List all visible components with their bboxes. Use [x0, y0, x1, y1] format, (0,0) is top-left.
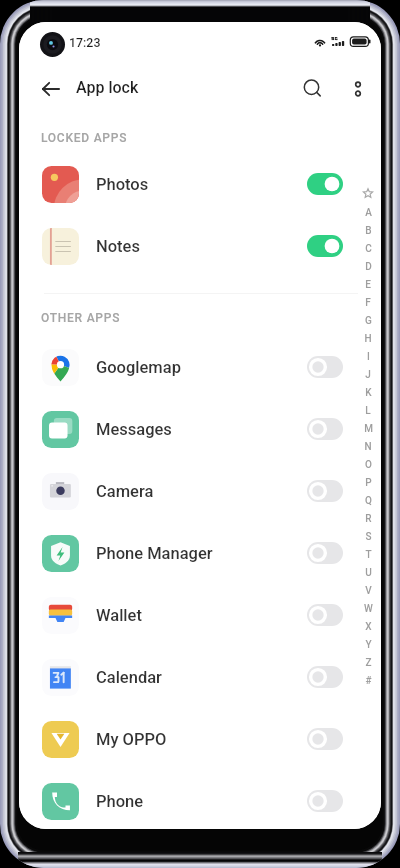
button[interactable]: Camera	[19, 460, 381, 522]
staticText: E	[365, 279, 371, 291]
staticText: #	[365, 675, 372, 687]
staticText: L	[365, 405, 371, 417]
staticText: H	[364, 333, 372, 345]
button[interactable]: App lock enabled	[307, 173, 343, 195]
staticText: Q	[365, 495, 372, 507]
staticText: W	[364, 603, 373, 615]
staticText: X	[365, 621, 372, 633]
button[interactable]: My OPPO	[19, 708, 381, 770]
staticText: Wallet	[96, 606, 142, 625]
staticText: O	[365, 459, 372, 471]
staticText: Googlemap	[96, 358, 181, 377]
button[interactable]: App lock disabled	[307, 666, 343, 688]
button[interactable]: Calendar	[19, 646, 381, 708]
staticText: 17:23	[69, 35, 101, 50]
button[interactable]: App lock disabled	[307, 790, 343, 812]
staticText: OTHER APPS	[41, 311, 121, 325]
staticText: I	[367, 351, 370, 363]
button[interactable]: Messages	[19, 398, 381, 460]
staticText: U	[365, 567, 372, 579]
staticText: F	[365, 297, 371, 309]
staticText: V	[365, 585, 372, 597]
button[interactable]: App lock disabled	[307, 356, 343, 378]
button[interactable]: Phone	[19, 770, 381, 829]
button[interactable]: App lock enabled	[307, 235, 343, 257]
button[interactable]: Back	[28, 66, 74, 112]
staticText: M	[364, 423, 373, 435]
staticText: App lock	[76, 78, 139, 97]
button[interactable]: App lock disabled	[307, 728, 343, 750]
button[interactable]: Search	[290, 66, 336, 112]
staticText: A	[365, 207, 372, 219]
button[interactable]: Wallet	[19, 584, 381, 646]
staticText: T	[365, 549, 372, 561]
button[interactable]: More options	[335, 66, 381, 112]
button[interactable]: Phone Manager	[19, 522, 381, 584]
staticText: Notes	[96, 237, 140, 256]
button[interactable]: App lock disabled	[307, 480, 343, 502]
staticText: J	[365, 369, 371, 381]
staticText: Phone	[96, 792, 144, 811]
button[interactable]: Notes	[19, 215, 381, 277]
staticText: R	[365, 513, 372, 525]
staticText: Calendar	[96, 668, 162, 687]
staticText: D	[365, 261, 372, 273]
staticText: K	[365, 387, 372, 399]
staticText: Camera	[96, 482, 154, 501]
staticText: Photos	[96, 175, 149, 194]
staticText: Messages	[96, 420, 172, 439]
staticText: C	[365, 243, 372, 255]
button[interactable]: App lock disabled	[307, 604, 343, 626]
staticText: N	[364, 441, 372, 453]
button[interactable]: App lock disabled	[307, 418, 343, 440]
staticText: Phone Manager	[96, 544, 213, 563]
staticText: LOCKED APPS	[41, 131, 128, 145]
staticText: B	[365, 225, 372, 237]
staticText: P	[365, 477, 372, 489]
staticText: Z	[365, 657, 372, 669]
button[interactable]: App lock disabled	[307, 542, 343, 564]
staticText: G	[365, 315, 372, 327]
staticText: S	[365, 531, 372, 543]
staticText: Y	[365, 639, 372, 651]
staticText: My OPPO	[96, 730, 167, 749]
button[interactable]: Photos	[19, 153, 381, 215]
button[interactable]: Googlemap	[19, 336, 381, 398]
